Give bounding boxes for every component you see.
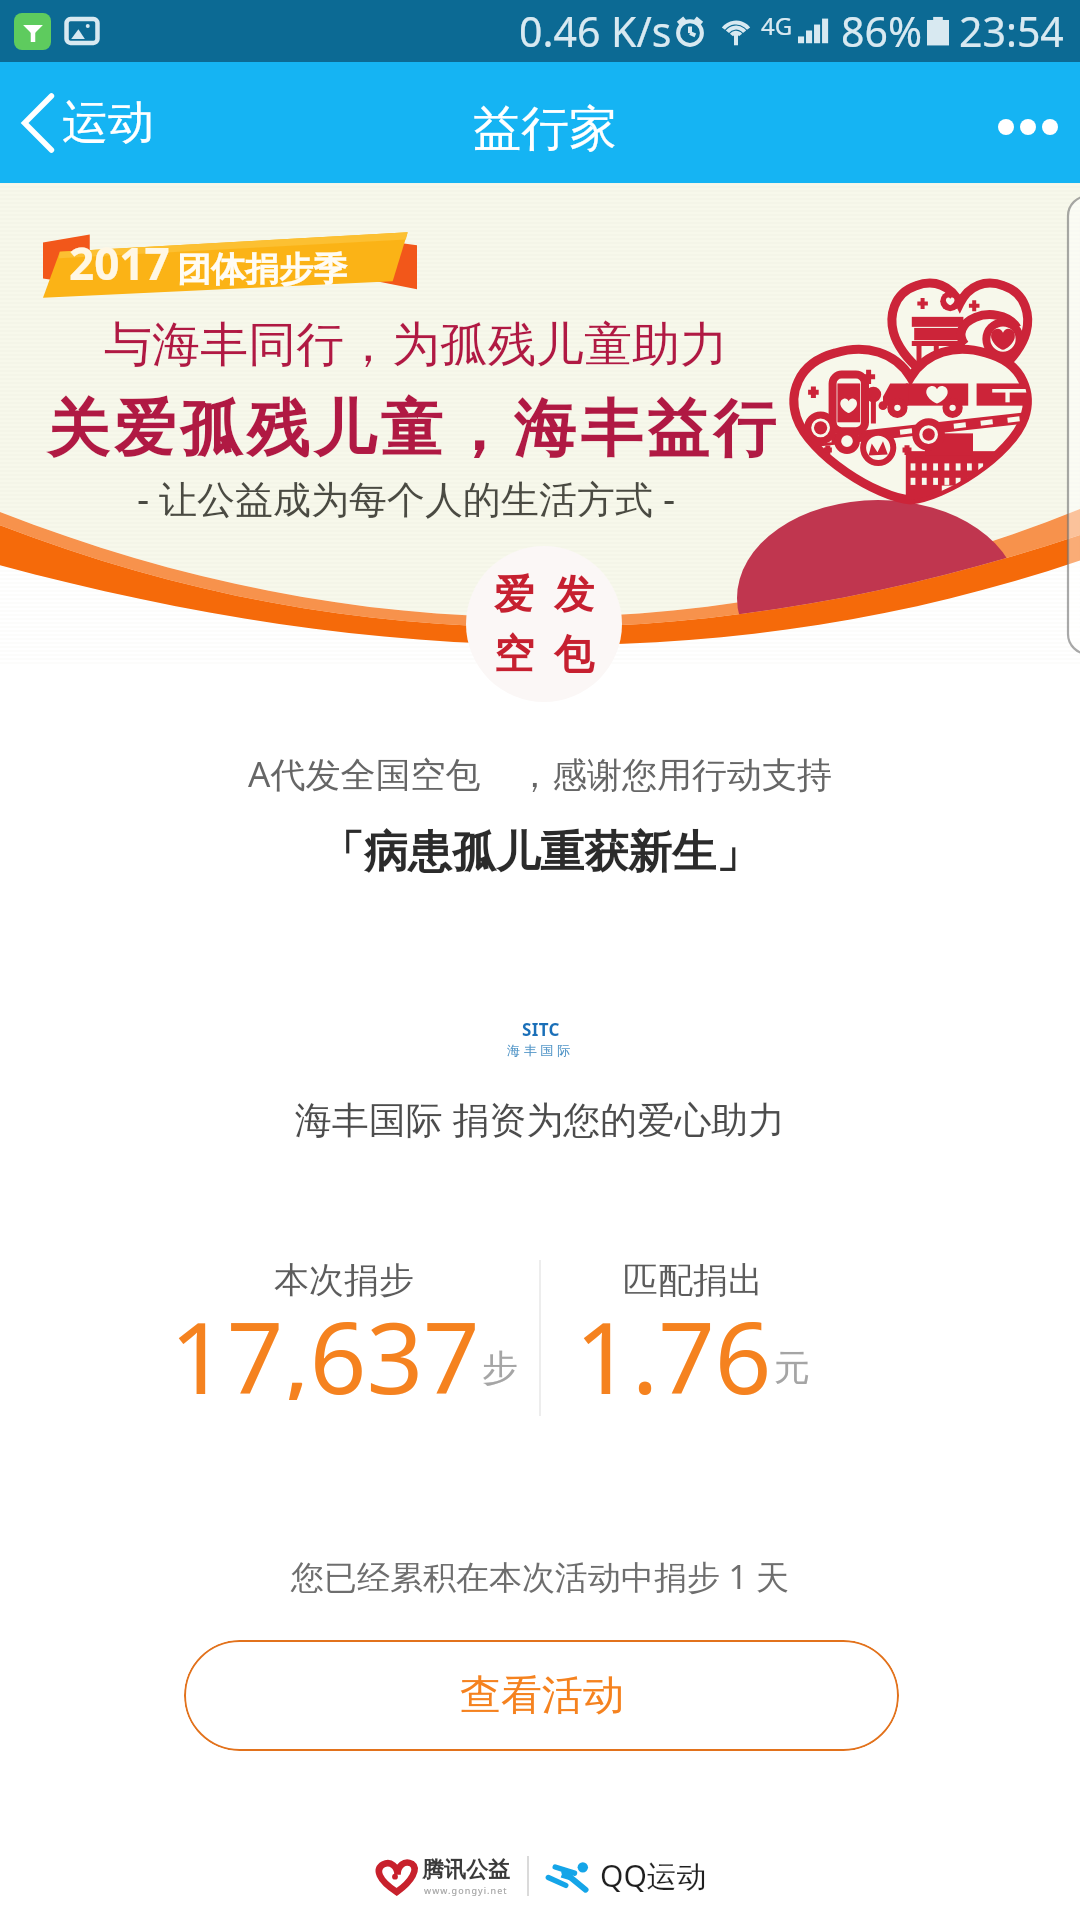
- staticText: 86%: [841, 3, 922, 59]
- staticText: 2017: [69, 233, 170, 293]
- staticText: 您已经累积在本次活动中捐步 1 天: [0, 1554, 1080, 1599]
- button[interactable]: 2017 团体捐步季 活动banner: [0, 183, 1080, 665]
- staticText: A代发全国空包 ，感谢您用行动支持: [0, 750, 1080, 798]
- staticText: 与海丰同行，为孤残儿童助力: [104, 315, 728, 375]
- staticText: 腾讯公益: [422, 1856, 510, 1884]
- staticText: 匹配捐出: [623, 1258, 763, 1302]
- button[interactable]: More options: [970, 68, 1080, 178]
- staticText: 爱: [494, 569, 534, 619]
- staticText: 17,637: [170, 1288, 480, 1400]
- staticText: 23:54: [959, 3, 1064, 59]
- staticText: 益行家: [473, 99, 617, 159]
- button[interactable]: 查看活动: [184, 1640, 899, 1751]
- staticText: 海丰国际: [507, 1042, 574, 1058]
- button[interactable]: 返回 运动: [0, 79, 172, 167]
- staticText: 运动: [62, 94, 154, 152]
- staticText: 本次捐步: [274, 1258, 414, 1302]
- staticText: 步: [482, 1345, 518, 1390]
- staticText: 关爱孤残儿童，海丰益行: [47, 390, 781, 468]
- staticText: 0.46 K/s: [519, 3, 672, 59]
- staticText: 发: [554, 569, 594, 619]
- staticText: 空: [494, 629, 534, 679]
- staticText: 海丰国际 捐资为您的爱心助力: [0, 1093, 1080, 1144]
- staticText: 元: [774, 1345, 810, 1390]
- staticText: 查看活动: [460, 1670, 624, 1722]
- staticText: QQ运动: [600, 1855, 707, 1896]
- staticText: 包: [554, 629, 594, 679]
- staticText: 1.76: [575, 1288, 772, 1400]
- staticText: - 让公益成为每个人的生活方式 -: [137, 472, 676, 524]
- staticText: SITC: [522, 1018, 560, 1041]
- staticText: www.gongyi.net: [424, 1884, 508, 1896]
- staticText: 团体捐步季: [177, 248, 347, 291]
- staticText: 「病患孤儿重获新生」: [0, 825, 1080, 880]
- staticText: 4G: [761, 9, 793, 42]
